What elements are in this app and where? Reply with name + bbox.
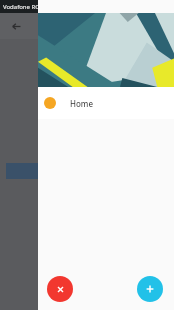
button[interactable]: Add: [137, 276, 163, 302]
staticText: Vodafone RO: [3, 3, 40, 11]
button[interactable]: Back: [6, 16, 26, 36]
button[interactable]: Close: [47, 276, 73, 302]
button[interactable]: Home: [38, 87, 174, 119]
staticText: Home: [70, 98, 94, 109]
